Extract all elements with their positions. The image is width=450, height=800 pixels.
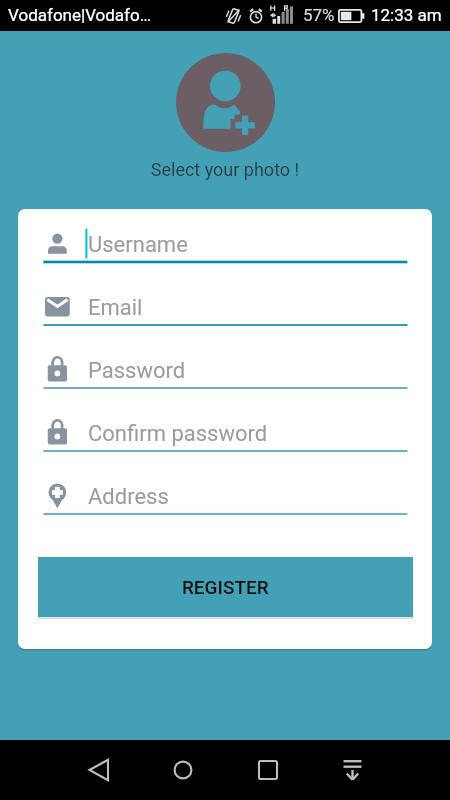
button[interactable]: Hide keyboard [327,740,377,800]
staticText: 57% [303,5,335,25]
staticText: Confirm password [88,421,268,447]
button[interactable]: Password [18,348,432,394]
button[interactable]: Select your photo [176,53,275,152]
staticText: Password [88,358,186,384]
staticText: Username [88,232,188,258]
staticText: Select your photo ! [0,159,450,180]
button[interactable]: Username [18,222,432,268]
button[interactable]: Email [18,285,432,331]
button[interactable]: Recent apps [243,740,293,800]
staticText: Address [88,484,169,510]
button[interactable]: Confirm password [18,411,432,457]
button[interactable]: REGISTER [38,557,413,617]
button[interactable]: Back [74,740,124,800]
button[interactable]: Home [158,740,208,800]
button[interactable]: Address [18,474,432,520]
staticText: 12:33 am [371,5,442,25]
staticText: Email [88,295,143,321]
staticText: Vodafone|Vodafo… [8,5,152,25]
staticText: REGISTER [182,576,269,598]
